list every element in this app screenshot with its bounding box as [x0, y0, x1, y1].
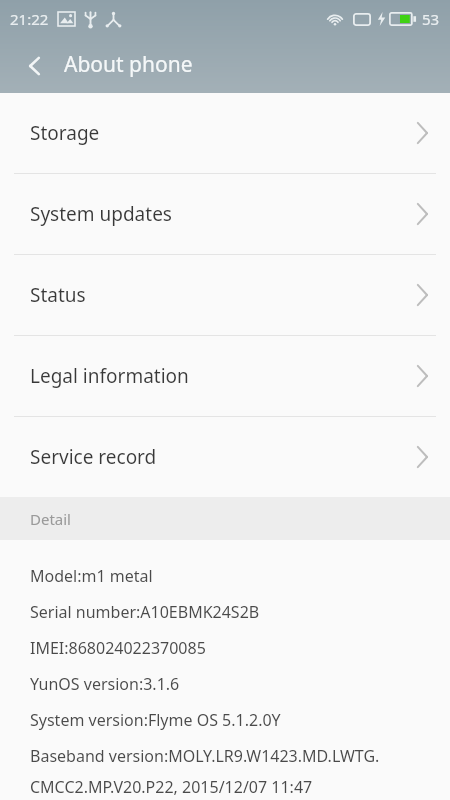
button[interactable]: Storage [0, 93, 450, 173]
staticText: Storage [30, 120, 100, 146]
staticText: Legal information [30, 363, 189, 389]
staticText: Service record [30, 444, 157, 470]
staticText: IMEI:868024022370085 [30, 637, 206, 659]
staticText: System version:Flyme OS 5.1.2.0Y [30, 709, 281, 731]
staticText: Baseband version:MOLY.LR9.W1423.MD.LWTG. [30, 745, 380, 767]
staticText: CMCC2.MP.V20.P22, 2015/12/07 11:47 [30, 776, 313, 798]
staticText: Serial number:A10EBMK24S2B [30, 601, 260, 623]
button[interactable]: Service record [0, 417, 450, 497]
staticText: Status [30, 282, 86, 308]
staticText: System updates [30, 201, 172, 227]
staticText: Detail [30, 509, 71, 529]
staticText: YunOS version:3.1.6 [30, 673, 180, 695]
staticText: Model:m1 metal [30, 565, 153, 587]
button[interactable]: Legal information [0, 336, 450, 416]
button[interactable]: Back [7, 38, 63, 93]
staticText: 21:22 [10, 9, 49, 29]
staticText: About phone [64, 50, 193, 79]
button[interactable]: System updates [0, 174, 450, 254]
staticText: 53 [422, 9, 440, 29]
button[interactable]: Status [0, 255, 450, 335]
